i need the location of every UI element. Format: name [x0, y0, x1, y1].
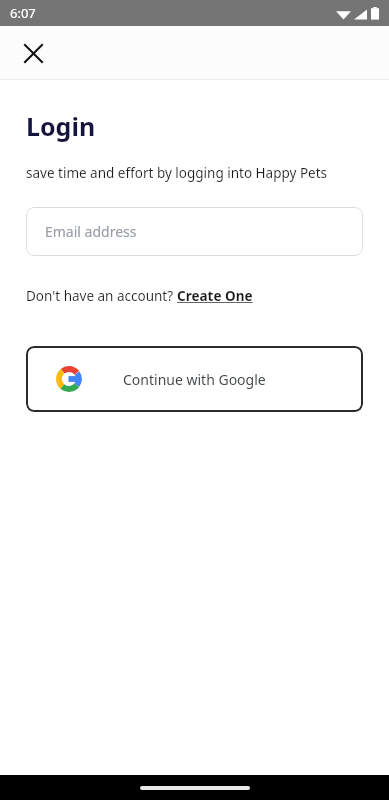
button[interactable]: Create One — [177, 287, 253, 305]
staticText: 6:07 — [10, 4, 36, 22]
button[interactable]: Continue with Google — [26, 346, 363, 412]
staticText: Login — [26, 109, 96, 143]
staticText: Continue with Google — [123, 370, 266, 389]
button[interactable]: Close — [12, 32, 54, 74]
staticText: Don't have an account? — [26, 287, 177, 305]
staticText: Email address — [45, 222, 137, 241]
button[interactable]: Email address — [26, 207, 363, 256]
staticText: save time and effort by logging into Hap… — [26, 164, 328, 182]
staticText: Create One — [177, 287, 253, 305]
